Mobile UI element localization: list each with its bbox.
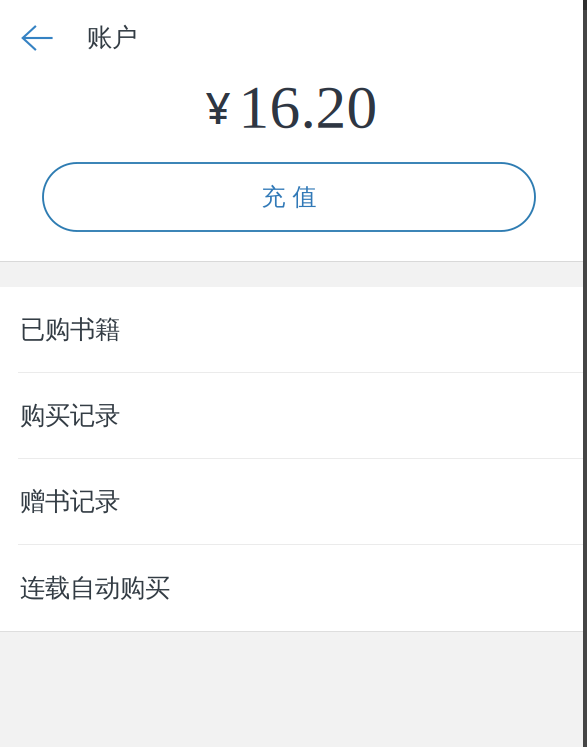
staticText: 16.20 (238, 73, 377, 141)
button[interactable]: 赠书记录 (0, 459, 583, 545)
staticText: 赠书记录 (20, 486, 120, 517)
staticText: 已购书籍 (20, 314, 120, 345)
button[interactable]: 已购书籍 (0, 287, 583, 373)
staticText: 账户 (87, 22, 137, 53)
button[interactable]: 购买记录 (0, 373, 583, 459)
staticText: ¥ (205, 78, 230, 136)
staticText: 连载自动购买 (20, 572, 170, 603)
staticText: 充 值 (261, 182, 316, 212)
button[interactable]: 充 值 (43, 163, 535, 231)
button[interactable]: Back (0, 7, 87, 62)
button[interactable]: 连载自动购买 (0, 545, 583, 631)
staticText: 购买记录 (20, 400, 120, 431)
